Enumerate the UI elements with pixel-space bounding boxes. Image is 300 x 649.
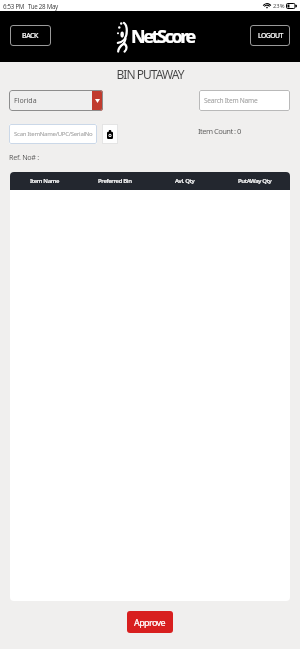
button[interactable]: Scan barcode with camera <box>102 124 118 144</box>
staticText: Florida <box>14 96 92 106</box>
staticText: 6:53 PM <box>3 2 25 10</box>
staticText: Avl. Qty <box>175 177 195 185</box>
staticText: NetScore <box>131 24 194 49</box>
button[interactable]: LOGOUT <box>250 25 290 46</box>
staticText: Ref. No# : <box>9 152 39 162</box>
staticText: Search Item Name <box>204 96 258 105</box>
staticText: LOGOUT <box>258 31 283 40</box>
staticText: Approve <box>134 616 166 628</box>
staticText: 23% <box>273 2 285 10</box>
button[interactable]: BACK <box>10 25 51 46</box>
button[interactable]: Approve <box>127 611 173 633</box>
button[interactable]: Florida <box>9 90 103 111</box>
staticText: BACK <box>22 31 39 41</box>
staticText: Scan ItemName/UPC/SerialNo <box>14 130 93 138</box>
staticText: BIN PUTAWAY <box>0 66 300 82</box>
staticText: Preferred Bin <box>98 177 132 185</box>
staticText: Tue 28 May <box>28 2 58 10</box>
button[interactable]: Search Item Name <box>199 90 290 111</box>
staticText: Item Name <box>30 177 60 185</box>
staticText: Item Count : 0 <box>198 126 241 136</box>
staticText: PutAWay Qty <box>238 177 272 185</box>
button[interactable]: Scan ItemName/UPC/SerialNo <box>9 124 97 144</box>
